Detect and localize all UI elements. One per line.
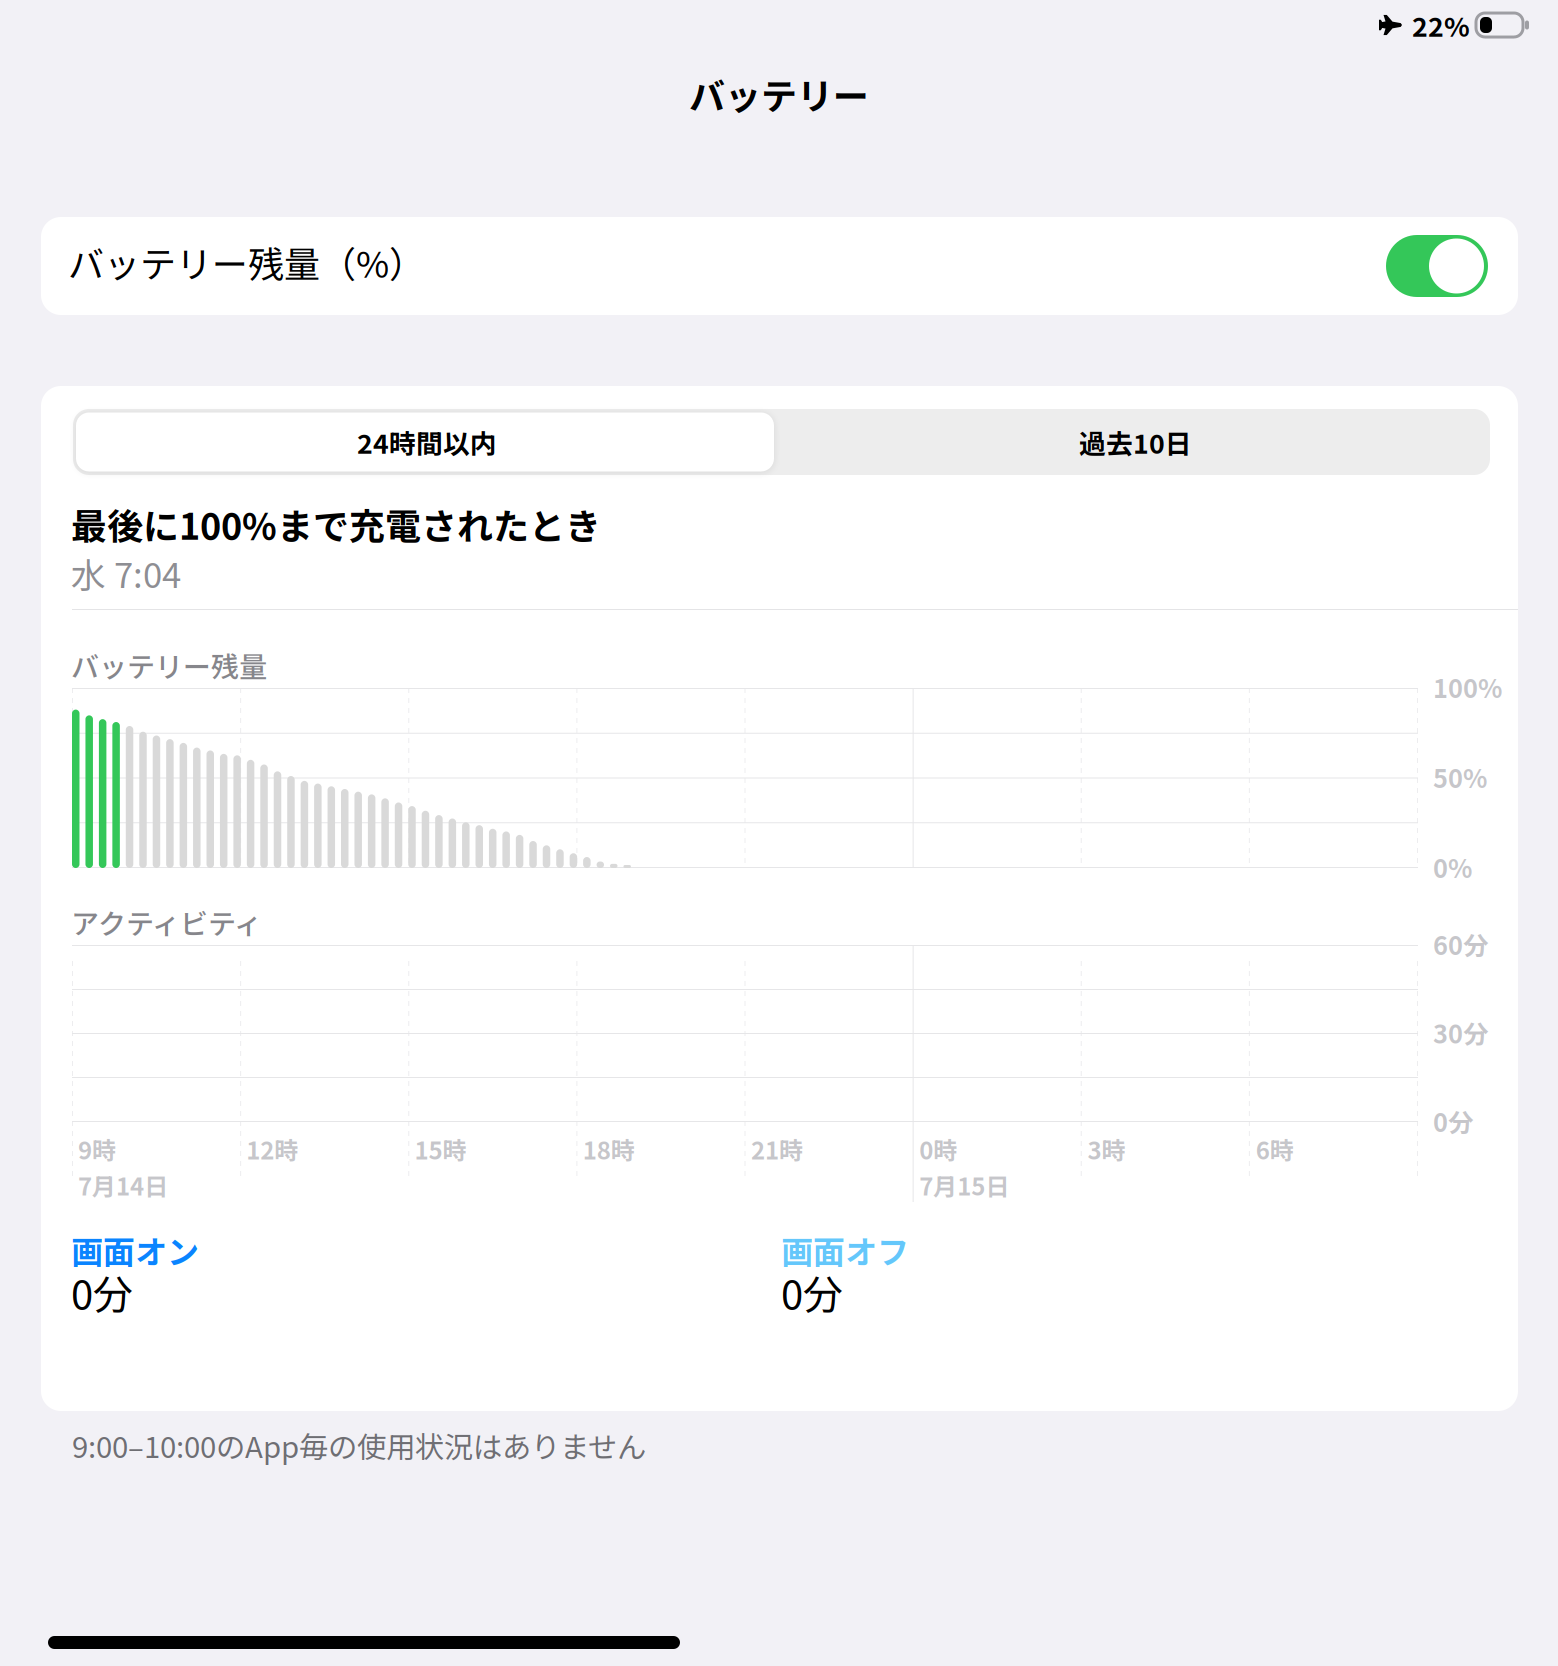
staticText: バッテリー残量: [71, 645, 267, 685]
staticText: 0時: [919, 1132, 957, 1166]
staticText: 22%: [1412, 6, 1470, 44]
staticText: 3時: [1087, 1132, 1125, 1166]
staticText: 0%: [1433, 849, 1472, 885]
staticText: 6時: [1256, 1132, 1294, 1166]
staticText: アクティビティ: [71, 902, 262, 942]
staticText: 9時: [78, 1132, 116, 1166]
staticText: 0分: [71, 1263, 133, 1321]
staticText: 過去10日: [1079, 423, 1192, 461]
staticText: 18時: [583, 1132, 635, 1166]
staticText: 30分: [1433, 1014, 1488, 1051]
staticText: 7月15日: [919, 1168, 1009, 1202]
staticText: 画面オン: [71, 1227, 199, 1273]
staticText: 画面オフ: [781, 1227, 909, 1273]
staticText: 9:00–10:00のApp毎の使用状況はありません: [72, 1424, 646, 1466]
staticText: 7月14日: [78, 1168, 168, 1202]
button[interactable]: 24時間以内: [73, 409, 781, 475]
staticText: 15時: [414, 1132, 466, 1166]
staticText: 50%: [1433, 759, 1487, 795]
staticText: バッテリー残量（%）: [68, 236, 425, 288]
staticText: 0分: [1433, 1103, 1473, 1139]
button[interactable]: 過去10日: [781, 409, 1490, 475]
staticText: 24時間以内: [357, 423, 497, 461]
staticText: 100%: [1433, 669, 1502, 705]
staticText: 21時: [751, 1132, 803, 1166]
staticText: 最後に100%まで充電されたとき: [71, 498, 601, 550]
staticText: 12時: [246, 1132, 298, 1166]
button[interactable]: バッテリー残量（%）: [41, 217, 1518, 315]
staticText: 0分: [781, 1263, 843, 1321]
staticText: バッテリー: [689, 68, 869, 120]
staticText: 水 7:04: [71, 548, 181, 598]
staticText: 60分: [1433, 926, 1488, 962]
